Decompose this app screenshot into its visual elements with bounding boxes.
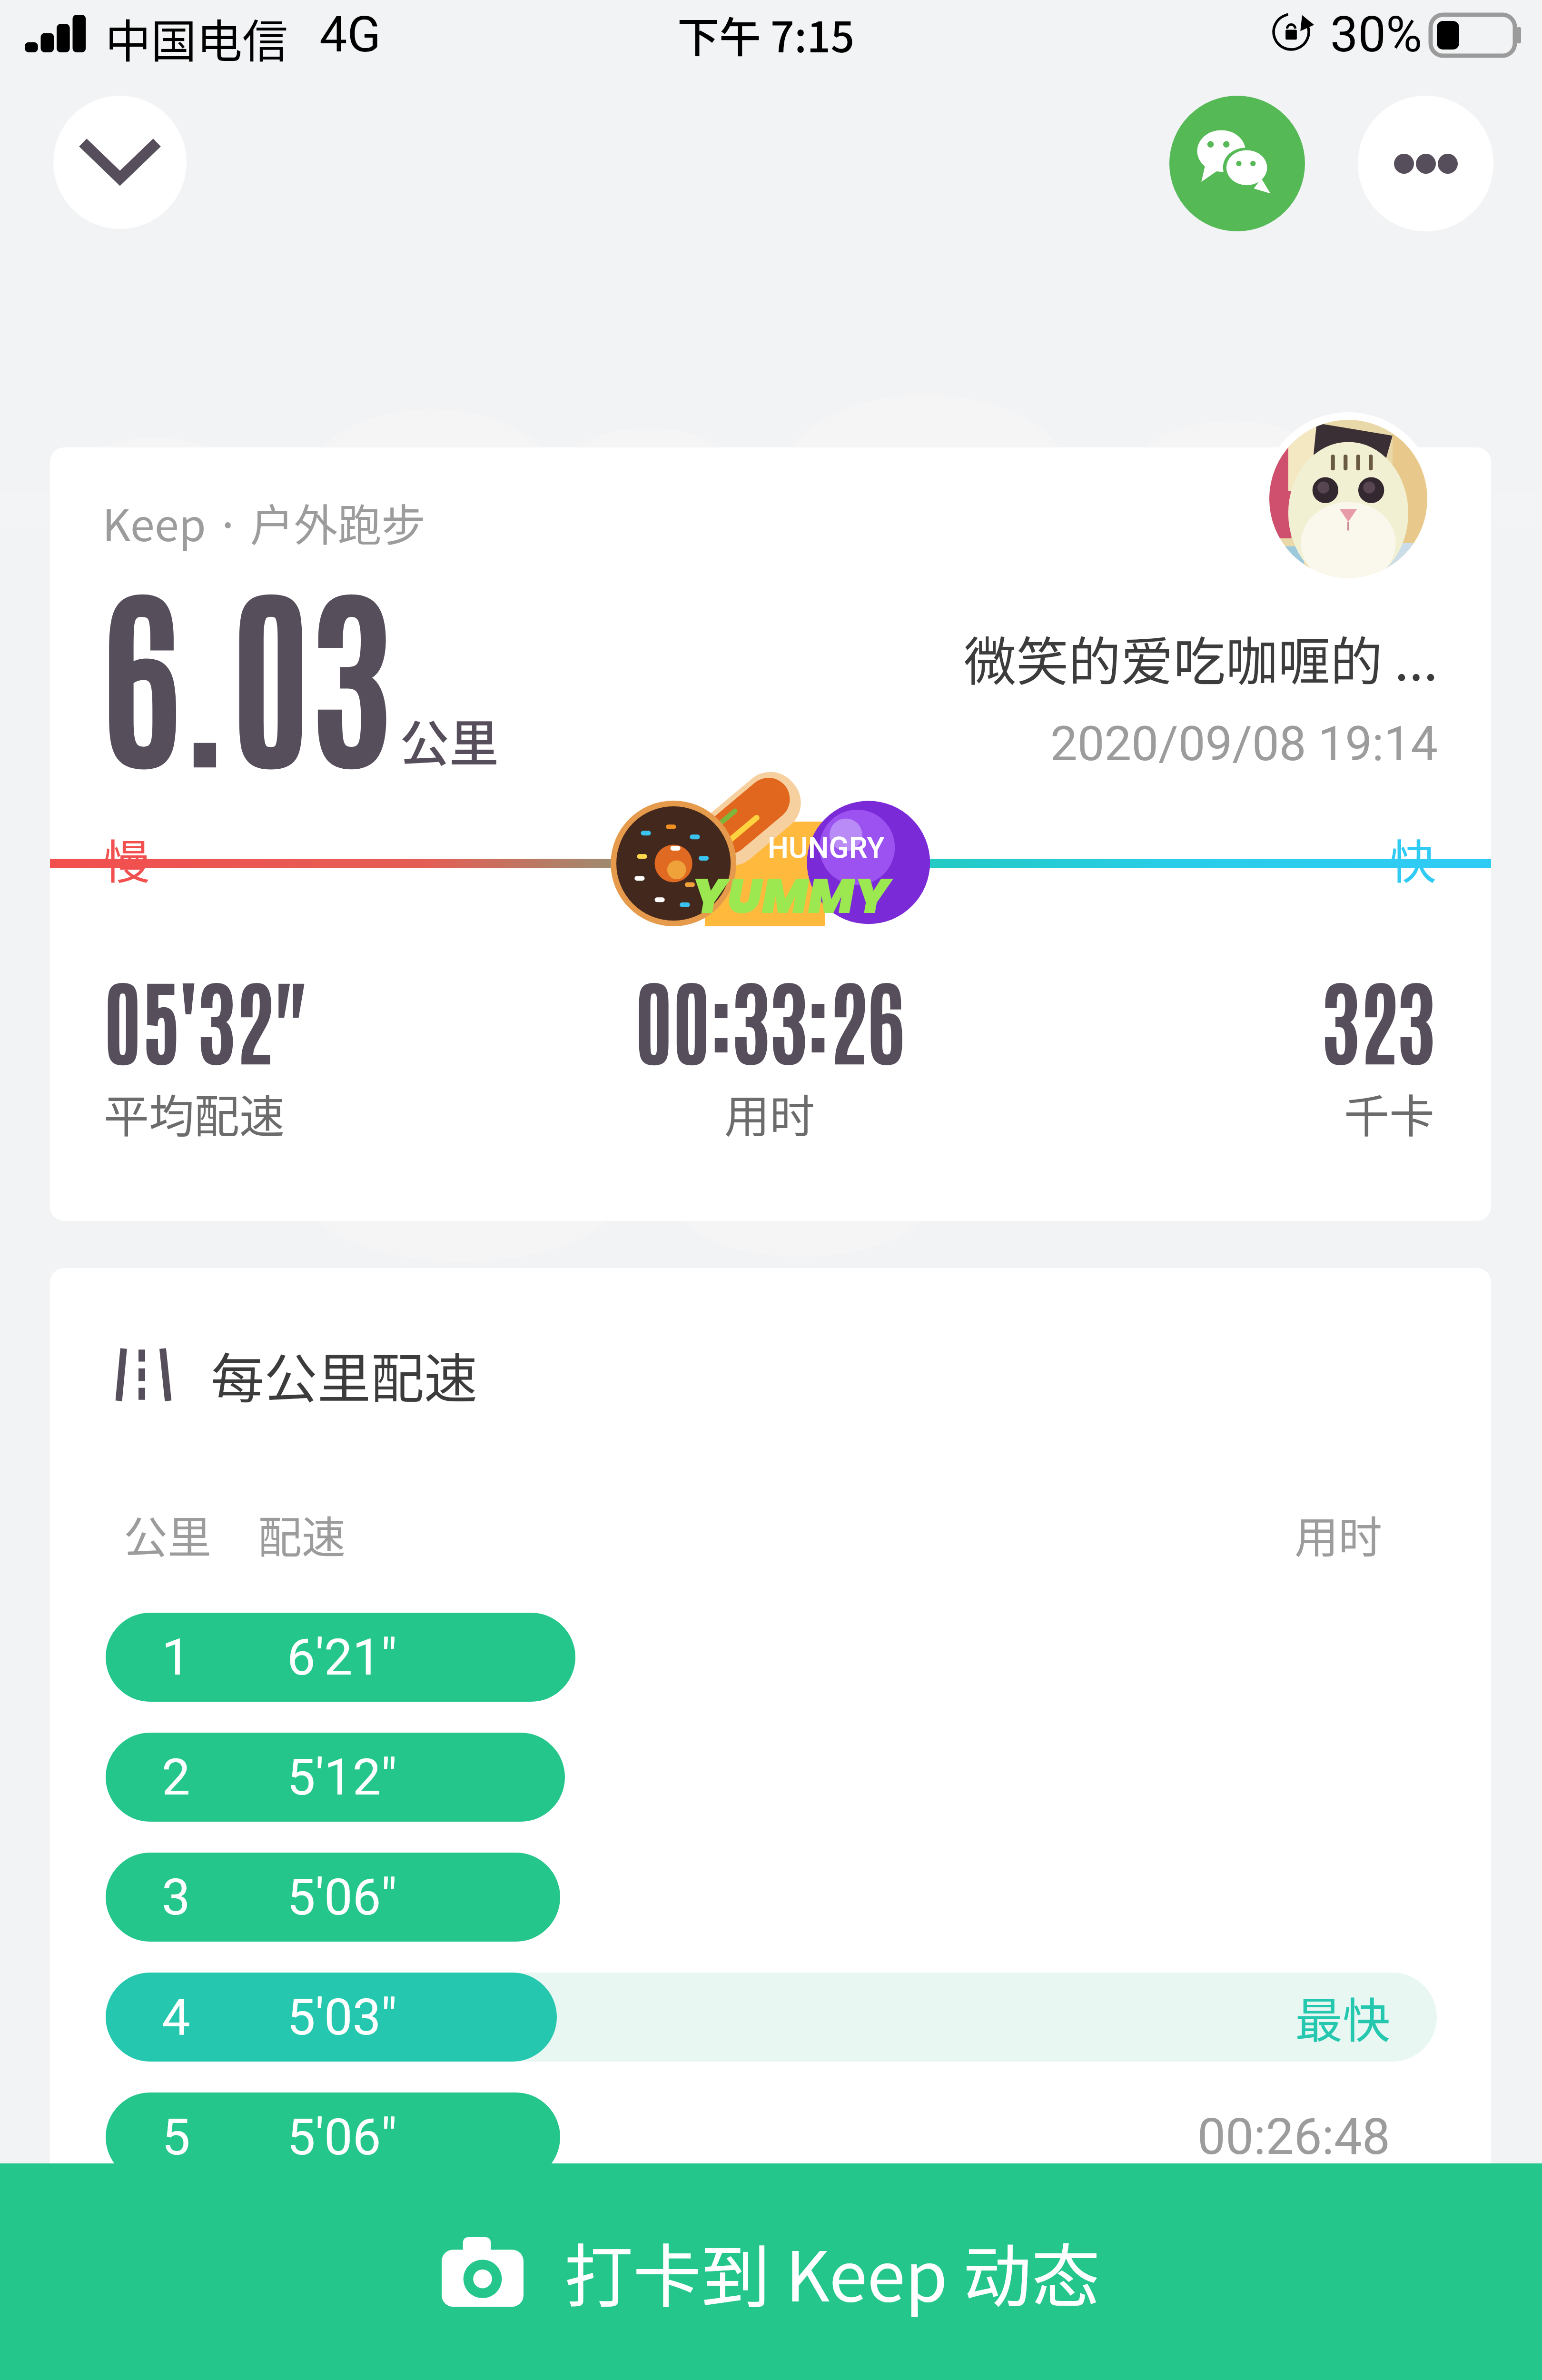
- button[interactable]: Keep · 户外跑步: [50, 447, 1491, 1221]
- staticText: 00:26:48: [1197, 2108, 1390, 2166]
- staticText: 用时: [724, 1081, 815, 1146]
- button[interactable]: 3: [50, 1837, 1491, 1957]
- staticText: 5'06": [287, 2108, 397, 2167]
- staticText: 最快: [1295, 1983, 1390, 2052]
- staticText: 公里: [124, 1502, 212, 1566]
- button[interactable]: Collapse: [53, 96, 187, 229]
- staticText: 每公里配速: [211, 1336, 477, 1413]
- button[interactable]: 4: [50, 1957, 1491, 2077]
- staticText: 05'32": [104, 959, 306, 1076]
- staticText: 微笑的爱吃咖喱的 ...: [964, 620, 1438, 695]
- button[interactable]: 打卡到 Keep 动态: [0, 2163, 1542, 2380]
- staticText: 快: [1390, 824, 1437, 892]
- staticText: 千卡: [1344, 1081, 1435, 1146]
- button[interactable]: User avatar: [1262, 412, 1435, 585]
- staticText: 323: [1322, 959, 1435, 1076]
- staticText: 6.03: [100, 542, 391, 791]
- staticText: Keep · 户外跑步: [102, 490, 425, 554]
- staticText: 5: [162, 2108, 190, 2167]
- staticText: 30%: [1330, 6, 1423, 64]
- staticText: 中国电信: [105, 5, 288, 67]
- button[interactable]: 每公里配速: [115, 1336, 477, 1413]
- staticText: 3: [162, 1868, 190, 1927]
- button[interactable]: 1: [50, 1597, 1491, 1717]
- button[interactable]: 5: [50, 2077, 1491, 2197]
- staticText: 5'12": [287, 1748, 397, 1807]
- staticText: 平均配速: [104, 1081, 285, 1146]
- staticText: 公里: [400, 704, 499, 776]
- staticText: 配速: [258, 1502, 346, 1566]
- button[interactable]: 6: [50, 2197, 1491, 2317]
- staticText: 5'03": [287, 1988, 397, 2047]
- staticText: 6'21": [287, 1628, 397, 1687]
- staticText: 下午 7:15: [677, 4, 855, 64]
- staticText: YUMMY: [692, 862, 890, 930]
- staticText: 4G: [319, 6, 381, 64]
- staticText: 1: [162, 1628, 190, 1687]
- button[interactable]: Share to WeChat: [1169, 96, 1305, 231]
- staticText: 打卡到 Keep 动态: [564, 2222, 1100, 2321]
- staticText: 5'06": [287, 1868, 397, 1927]
- staticText: 4: [162, 1988, 190, 2047]
- staticText: 2: [162, 1748, 190, 1807]
- staticText: 00:33:26: [635, 959, 905, 1076]
- staticText: 2020/09/08 19:14: [1050, 715, 1438, 772]
- button[interactable]: 2: [50, 1717, 1491, 1837]
- staticText: HUNGRY: [768, 830, 885, 865]
- staticText: 慢: [103, 824, 150, 892]
- button[interactable]: More options: [1358, 96, 1493, 231]
- staticText: 用时: [1295, 1502, 1383, 1566]
